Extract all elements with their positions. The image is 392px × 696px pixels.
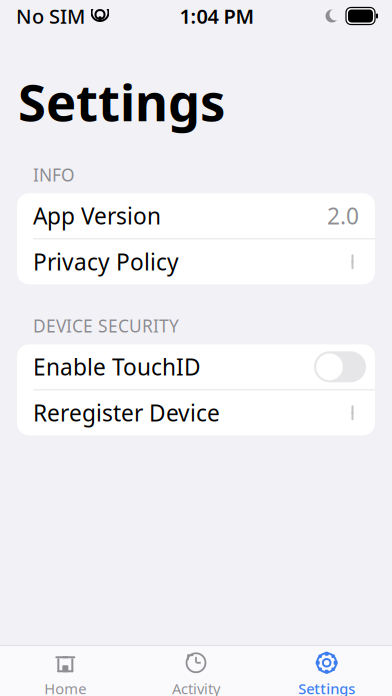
staticText: App Version bbox=[33, 201, 161, 231]
button[interactable]: Privacy Policy bbox=[17, 239, 375, 284]
button[interactable]: App Version bbox=[17, 193, 375, 238]
staticText: Home bbox=[44, 679, 86, 696]
button[interactable]: Reregister Device bbox=[17, 390, 375, 435]
button[interactable]: Enable TouchID bbox=[17, 344, 375, 389]
staticText: No SIM bbox=[16, 3, 85, 29]
staticText: Settings bbox=[18, 68, 225, 135]
staticText: DEVICE SECURITY bbox=[33, 314, 179, 337]
staticText: Settings bbox=[298, 679, 355, 696]
button[interactable]: Home bbox=[0, 644, 131, 696]
staticText: INFO bbox=[33, 163, 75, 186]
staticText: Activity bbox=[172, 679, 220, 696]
button[interactable]: Settings bbox=[261, 644, 392, 696]
staticText: Privacy Policy bbox=[33, 247, 179, 277]
staticText: 2.0 bbox=[327, 201, 359, 231]
button[interactable]: Activity bbox=[131, 644, 261, 696]
staticText: 1:04 PM bbox=[179, 3, 254, 29]
staticText: Enable TouchID bbox=[33, 352, 201, 382]
staticText: Reregister Device bbox=[33, 398, 220, 428]
